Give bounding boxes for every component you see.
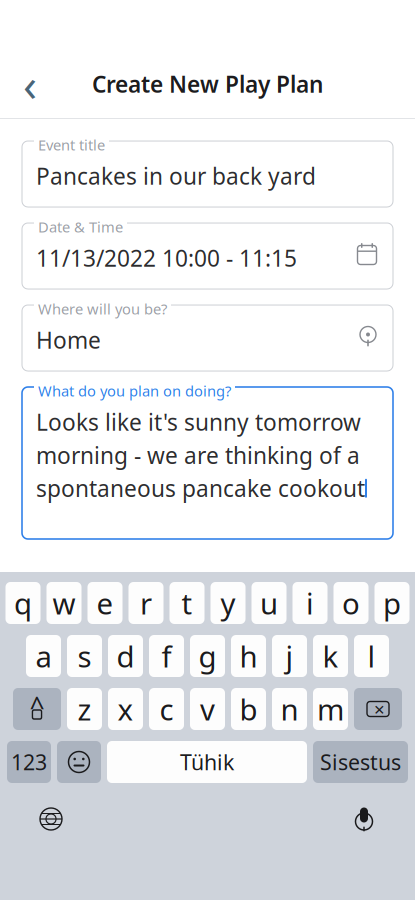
button[interactable]: v bbox=[190, 688, 225, 730]
staticText: j bbox=[285, 636, 293, 675]
button[interactable]: q bbox=[5, 582, 40, 624]
button[interactable]: Dictation bbox=[351, 805, 377, 833]
button[interactable]: l bbox=[354, 635, 389, 677]
staticText: h bbox=[239, 636, 257, 675]
button[interactable]: g bbox=[190, 635, 225, 677]
staticText: a bbox=[35, 636, 51, 675]
staticText: Create New Play Plan bbox=[92, 69, 323, 99]
button[interactable]: d bbox=[108, 635, 143, 677]
button[interactable]: z bbox=[67, 688, 102, 730]
staticText: 11/13/2022 10:00 - 11:15 bbox=[36, 243, 297, 273]
staticText: v bbox=[200, 689, 215, 728]
staticText: r bbox=[140, 583, 152, 622]
staticText: g bbox=[198, 636, 216, 675]
button[interactable]: j bbox=[272, 635, 307, 677]
staticText: e bbox=[96, 583, 113, 622]
staticText: ^ bbox=[29, 688, 44, 724]
button[interactable]: i bbox=[292, 582, 327, 624]
button[interactable]: y bbox=[210, 582, 245, 624]
button[interactable]: o bbox=[333, 582, 368, 624]
button[interactable]: x bbox=[108, 688, 143, 730]
button[interactable]: h bbox=[231, 635, 266, 677]
staticText: y bbox=[220, 583, 235, 622]
button[interactable]: Sisestus bbox=[313, 741, 408, 783]
button[interactable]: Back bbox=[8, 62, 52, 106]
staticText: Tühik bbox=[180, 748, 234, 776]
button[interactable]: w bbox=[46, 582, 81, 624]
button[interactable]: u bbox=[251, 582, 286, 624]
staticText: x bbox=[117, 689, 133, 728]
staticText: t bbox=[181, 583, 192, 622]
button[interactable]: Delete bbox=[354, 688, 402, 730]
button[interactable]: t bbox=[169, 582, 204, 624]
staticText: 123 bbox=[11, 748, 47, 776]
button[interactable]: b bbox=[231, 688, 266, 730]
staticText: Home bbox=[36, 325, 101, 355]
staticText: × bbox=[374, 697, 385, 721]
button[interactable]: e bbox=[87, 582, 122, 624]
staticText: u bbox=[260, 583, 278, 622]
button[interactable]: Tühik bbox=[107, 741, 307, 783]
staticText: spontaneous pancake cookout bbox=[36, 473, 365, 503]
staticText: Date & Time bbox=[38, 217, 123, 236]
staticText: Sisestus bbox=[320, 748, 401, 776]
staticText: d bbox=[116, 636, 134, 675]
button[interactable]: a bbox=[26, 635, 61, 677]
staticText: i bbox=[306, 583, 314, 622]
staticText: s bbox=[77, 636, 91, 675]
staticText: q bbox=[14, 583, 32, 622]
staticText: c bbox=[159, 689, 173, 728]
button[interactable]: p bbox=[374, 582, 409, 624]
staticText: k bbox=[322, 636, 338, 675]
staticText: m bbox=[317, 689, 344, 728]
button[interactable]: f bbox=[149, 635, 184, 677]
staticText: o bbox=[342, 583, 360, 622]
button[interactable]: 123 bbox=[7, 741, 51, 783]
staticText: b bbox=[239, 689, 257, 728]
staticText: morning - we are thinking of a bbox=[36, 440, 360, 470]
button[interactable]: k bbox=[313, 635, 348, 677]
staticText: Where will you be? bbox=[38, 299, 167, 318]
button[interactable]: r bbox=[128, 582, 163, 624]
button[interactable]: Shift bbox=[13, 688, 61, 730]
staticText: n bbox=[280, 689, 298, 728]
staticText: Looks like it's sunny tomorrow bbox=[36, 407, 361, 437]
button[interactable]: c bbox=[149, 688, 184, 730]
staticText: f bbox=[161, 636, 171, 675]
staticText: w bbox=[52, 583, 75, 622]
staticText: z bbox=[77, 689, 91, 728]
staticText: What do you plan on doing? bbox=[38, 381, 231, 400]
button[interactable]: Next keyboard bbox=[38, 806, 64, 832]
staticText: l bbox=[367, 636, 375, 675]
staticText: p bbox=[383, 583, 401, 622]
button[interactable]: Emoji bbox=[57, 741, 101, 783]
staticText: ‹ bbox=[23, 54, 37, 114]
button[interactable]: n bbox=[272, 688, 307, 730]
button[interactable]: s bbox=[67, 635, 102, 677]
staticText: Pancakes in our back yard bbox=[36, 161, 316, 191]
staticText: Event title bbox=[38, 135, 105, 154]
button[interactable]: m bbox=[313, 688, 348, 730]
